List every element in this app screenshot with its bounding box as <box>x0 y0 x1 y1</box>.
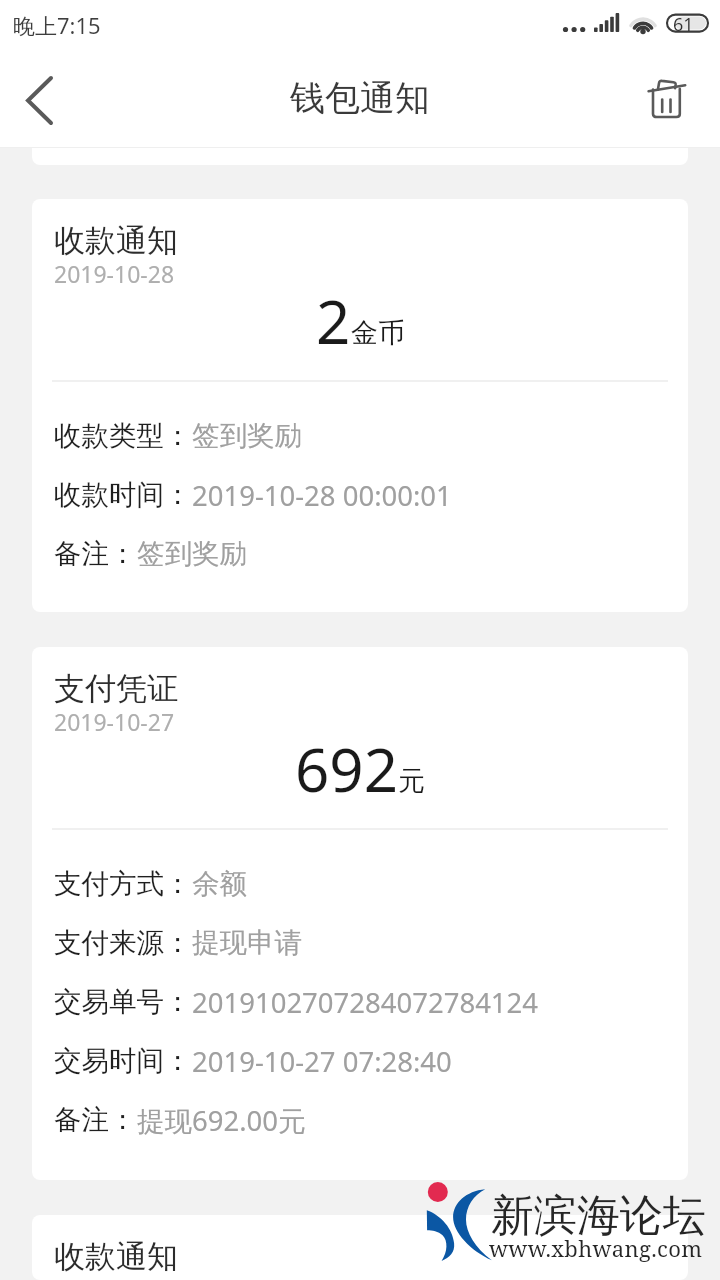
staticText: 支付来源： <box>54 926 192 961</box>
staticText: 2019102707284072784124 <box>192 984 539 1021</box>
staticText: 61 <box>673 12 694 37</box>
staticText: 签到奖励 <box>192 419 302 454</box>
staticText: 交易单号： <box>54 985 192 1020</box>
staticText: 余额 <box>192 867 247 902</box>
staticText: 支付方式： <box>54 867 192 902</box>
staticText: 签到奖励 <box>137 537 247 572</box>
staticText: 备注： <box>54 1103 137 1138</box>
staticText: 2019-10-28 <box>54 258 175 289</box>
staticText: 晚上7:15 <box>13 10 101 40</box>
staticText: 备注： <box>54 537 137 572</box>
staticText: 692 <box>295 728 398 810</box>
staticText: 2019-10-27 <box>54 706 175 737</box>
staticText: www.xbhwang.com <box>489 1233 703 1263</box>
button[interactable]: 收款通知 <box>32 199 688 612</box>
button[interactable]: Delete <box>628 56 720 148</box>
button[interactable]: Back <box>0 56 92 148</box>
button[interactable]: 收款通知 <box>32 1215 688 1280</box>
staticText: 交易时间： <box>54 1044 192 1079</box>
staticText: 新滨海论坛 <box>491 1189 706 1243</box>
button[interactable]: 支付凭证 <box>32 647 688 1180</box>
staticText: 2 <box>316 280 351 362</box>
staticText: 2019-10-27 07:28:40 <box>192 1043 452 1080</box>
staticText: 收款通知 <box>54 221 178 260</box>
staticText: 钱包通知 <box>290 76 430 120</box>
staticText: 金币 <box>351 316 405 350</box>
staticText: 2019-10-28 00:00:01 <box>192 477 452 514</box>
staticText: 元 <box>398 764 425 798</box>
staticText: 提现申请 <box>192 926 302 961</box>
staticText: 收款类型： <box>54 419 192 454</box>
staticText: 收款时间： <box>54 478 192 513</box>
staticText: 提现692.00元 <box>137 1102 306 1140</box>
staticText: 支付凭证 <box>54 669 178 708</box>
staticText: 收款通知 <box>54 1237 178 1276</box>
